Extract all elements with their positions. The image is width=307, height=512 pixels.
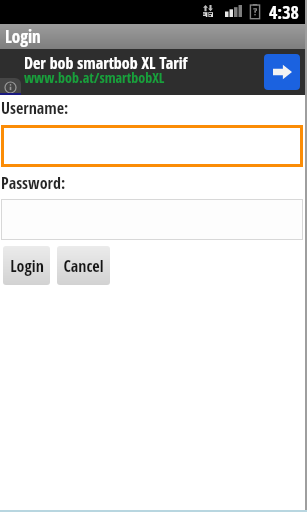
button[interactable]: Open advertisement xyxy=(264,54,300,90)
staticText: Cancel xyxy=(63,255,104,277)
button[interactable] xyxy=(1,199,303,240)
button[interactable]: Ad information xyxy=(0,78,21,95)
staticText: Login xyxy=(10,255,44,277)
staticText: Password: xyxy=(1,172,66,194)
staticText: Login xyxy=(5,25,41,48)
button[interactable]: Der bob smartbob XL Tarif xyxy=(0,49,307,95)
button[interactable]: Cancel xyxy=(57,246,110,285)
staticText: www.bob.at/smartbobXL xyxy=(24,68,165,87)
staticText: Der bob smartbob XL Tarif xyxy=(24,52,188,74)
staticText: 4:38 xyxy=(269,0,299,24)
staticText: Username: xyxy=(1,97,69,119)
button[interactable]: Login xyxy=(3,246,50,285)
button[interactable] xyxy=(1,125,303,167)
